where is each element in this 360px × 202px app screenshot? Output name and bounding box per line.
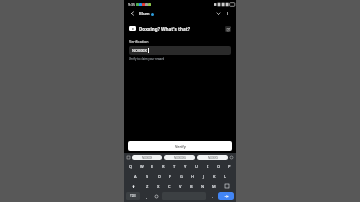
button[interactable]: T (169, 162, 180, 170)
button[interactable]: Y (180, 162, 191, 170)
button[interactable]: W (136, 162, 147, 170)
staticText: Verify to claim your reward (129, 57, 165, 61)
button[interactable]: U (191, 162, 202, 170)
staticText: X (157, 184, 160, 189)
staticText: F (169, 174, 172, 179)
staticText: J (203, 174, 205, 179)
staticText: B (190, 184, 193, 189)
button[interactable]: S (141, 172, 153, 180)
staticText: M (212, 184, 216, 189)
staticText: 9:35 (128, 2, 135, 7)
button[interactable]: O (213, 162, 224, 170)
button[interactable]: NO000XG (164, 155, 195, 160)
button[interactable]: NO000X (132, 155, 162, 160)
button[interactable]: G (176, 172, 187, 180)
button[interactable]: Verify (128, 141, 232, 151)
staticText: Blum (139, 11, 150, 17)
button[interactable]: K (209, 172, 220, 180)
staticText: NO000X (142, 156, 152, 160)
staticText: NO000XG (174, 156, 186, 160)
staticText: K (213, 174, 216, 179)
staticText: G (180, 174, 183, 179)
button[interactable]: C (164, 182, 175, 190)
staticText: T (173, 164, 176, 169)
button[interactable]: Q (125, 162, 136, 170)
staticText: A (134, 174, 137, 179)
staticText: Y (184, 164, 187, 169)
staticText: V (179, 184, 182, 189)
staticText: H (191, 174, 194, 179)
button[interactable]: Expand (214, 9, 223, 18)
button[interactable]: M (208, 182, 219, 190)
button[interactable]: Doxxing? What's that? (129, 23, 231, 34)
staticText: O (217, 164, 221, 169)
button[interactable]: J (198, 172, 209, 180)
button[interactable]: P (224, 162, 235, 170)
button[interactable]: B (186, 182, 197, 190)
staticText: Z (146, 184, 149, 189)
staticText: D (158, 174, 161, 179)
button[interactable]: Period (207, 192, 217, 200)
button[interactable]: ?123 (126, 192, 140, 200)
staticText: Verify (175, 144, 186, 149)
staticText: . (212, 194, 213, 199)
button[interactable]: X (153, 182, 164, 190)
button[interactable]: Keyboard settings (229, 155, 234, 160)
staticText: E (151, 164, 154, 169)
button[interactable]: Enter (218, 192, 234, 200)
staticText: L (224, 174, 227, 179)
staticText: C (168, 184, 171, 189)
staticText: NO00XS (208, 156, 218, 160)
button[interactable]: Emoji (151, 192, 161, 200)
button[interactable]: Blum (139, 11, 154, 17)
button[interactable]: N (197, 182, 208, 190)
button[interactable]: Back (128, 9, 137, 18)
staticText: I (207, 164, 209, 169)
staticText: N (201, 184, 205, 189)
staticText: ?123 (130, 194, 136, 198)
staticText: R (162, 164, 165, 169)
staticText: S (146, 174, 149, 179)
staticText: Q (129, 164, 133, 169)
button[interactable]: F (165, 172, 176, 180)
button[interactable]: R (158, 162, 169, 170)
staticText: NO000X (132, 48, 147, 53)
button[interactable]: D (153, 172, 165, 180)
staticText: Verification (129, 39, 149, 44)
button[interactable]: More options (223, 9, 232, 18)
button[interactable]: H (187, 172, 198, 180)
button[interactable]: NO000X (129, 46, 231, 55)
button[interactable]: Shift (125, 182, 142, 190)
staticText: P (228, 164, 231, 169)
staticText: , (146, 194, 147, 199)
staticText: U (195, 164, 198, 169)
button[interactable]: I (202, 162, 213, 170)
button[interactable]: E (147, 162, 158, 170)
button[interactable]: Z (142, 182, 153, 190)
button[interactable]: Open in browser (225, 26, 231, 32)
button[interactable]: Backspace (219, 182, 235, 190)
staticText: W (140, 164, 144, 169)
button[interactable]: V (175, 182, 186, 190)
button[interactable]: L (220, 172, 231, 180)
button[interactable]: A (129, 172, 141, 180)
button[interactable]: NO00XS (197, 155, 228, 160)
button[interactable]: Comma (141, 192, 151, 200)
staticText: Doxxing? What's that? (139, 26, 190, 32)
button[interactable]: Clipboard (126, 155, 131, 160)
